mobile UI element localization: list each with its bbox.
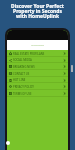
button[interactable]: TERMS OF USE [7, 90, 68, 97]
staticText: Discover Your Perfect Property in Second… [2, 4, 73, 19]
staticText: CONTACT US [13, 72, 30, 76]
staticText: SOCIAL MEDIA [13, 58, 32, 62]
button[interactable]: REAL ESTATE PROFILANS [7, 50, 68, 57]
staticText: HOT LINE [13, 78, 26, 82]
staticText: BREAKING NEWS [13, 65, 35, 69]
button[interactable]: PRIVACY POLICY [7, 83, 68, 90]
button[interactable]: CONTACT US [7, 70, 68, 77]
staticText: PRIVACY POLICY [13, 85, 34, 89]
staticText: TERMS OF USE [13, 92, 32, 96]
button[interactable]: Chat [6, 141, 10, 145]
button[interactable]: BREAKING NEWS [7, 63, 68, 70]
staticText: HomeUplink [31, 44, 45, 47]
button[interactable]: SOCIAL MEDIA [7, 57, 68, 63]
button[interactable]: HOT LINE [7, 77, 68, 83]
staticText: REAL ESTATE PROFILANS [13, 52, 45, 56]
